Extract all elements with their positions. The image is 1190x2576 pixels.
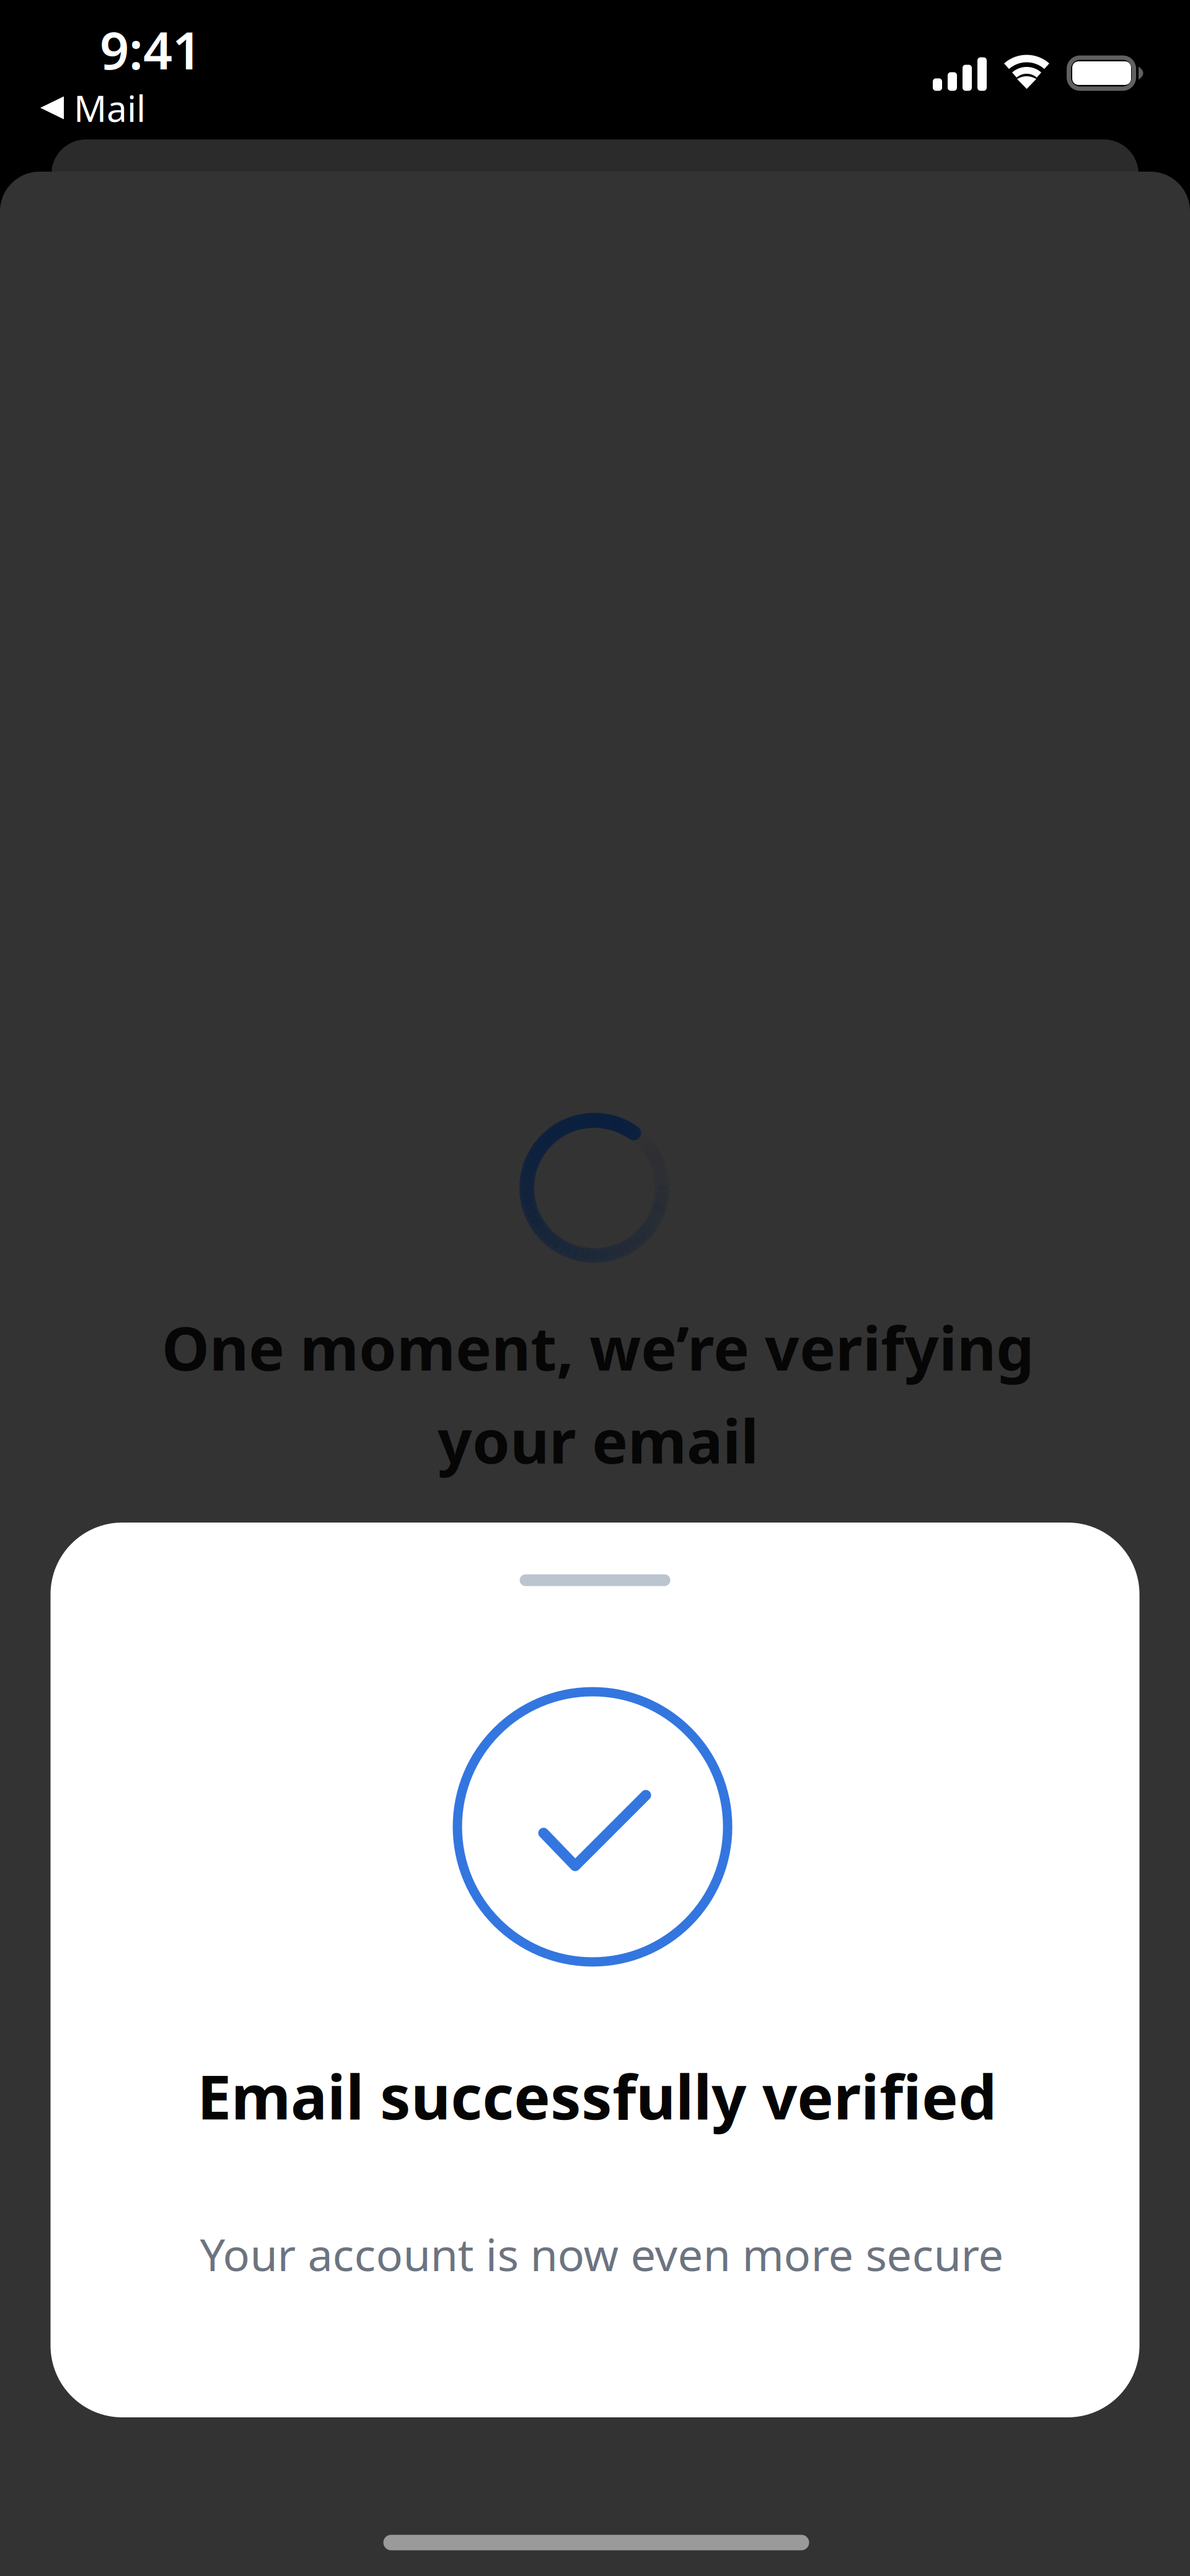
staticText: Mail [74,84,146,132]
staticText: Your account is now even more secure [200,2224,1004,2283]
button[interactable]: Dismiss sheet [445,1547,745,1613]
staticText: your email [438,1400,759,1480]
staticText: Email successfully verified [197,2055,997,2136]
staticText: 9:41 [100,16,201,84]
button[interactable]: Mail [28,74,158,142]
staticText: One moment, we’re verifying [162,1307,1034,1387]
